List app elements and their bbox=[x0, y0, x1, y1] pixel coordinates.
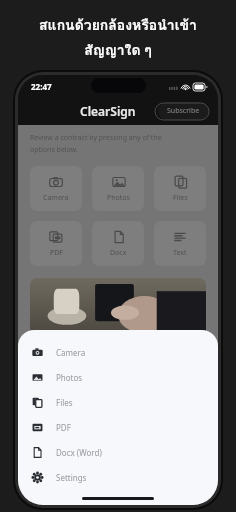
button[interactable]: Text bbox=[154, 221, 206, 266]
button[interactable]: Docx bbox=[92, 221, 144, 266]
staticText: Subscribe bbox=[167, 106, 200, 116]
staticText: Camera bbox=[56, 347, 86, 358]
staticText: Docx (Word) bbox=[56, 447, 102, 458]
button[interactable] bbox=[30, 278, 206, 338]
button[interactable]: Camera bbox=[18, 340, 218, 365]
button[interactable]: Docx (Word) bbox=[18, 440, 218, 465]
staticText: Camera bbox=[43, 193, 69, 203]
button[interactable]: Settings bbox=[18, 465, 218, 490]
button[interactable]: Subscribe bbox=[158, 102, 209, 120]
staticText: PDF bbox=[56, 422, 71, 433]
staticText: สัญญาใด ๆ bbox=[84, 39, 152, 61]
staticText: สแกนด้วยกล้องหรือนำเข้า bbox=[39, 14, 197, 36]
staticText: options below. bbox=[30, 145, 78, 155]
staticText: Text bbox=[173, 248, 187, 258]
button[interactable]: Camera bbox=[30, 166, 82, 211]
staticText: Files bbox=[173, 193, 188, 203]
staticText: Review a contract by pressing any of the bbox=[30, 133, 162, 143]
button[interactable]: PDF bbox=[30, 221, 82, 266]
staticText: Photos bbox=[107, 193, 130, 203]
button[interactable]: Photos bbox=[92, 166, 144, 211]
button[interactable]: Files bbox=[18, 390, 218, 415]
staticText: Photos bbox=[56, 372, 83, 383]
staticText: Files bbox=[56, 397, 73, 408]
staticText: ClearSign bbox=[80, 103, 136, 119]
staticText: Docx bbox=[110, 248, 127, 258]
button[interactable]: PDF bbox=[18, 415, 218, 440]
staticText: PDF bbox=[50, 248, 63, 258]
button[interactable]: Files bbox=[154, 166, 206, 211]
staticText: 22:47 bbox=[31, 81, 52, 92]
staticText: Settings bbox=[56, 472, 87, 483]
button[interactable]: Photos bbox=[18, 365, 218, 390]
